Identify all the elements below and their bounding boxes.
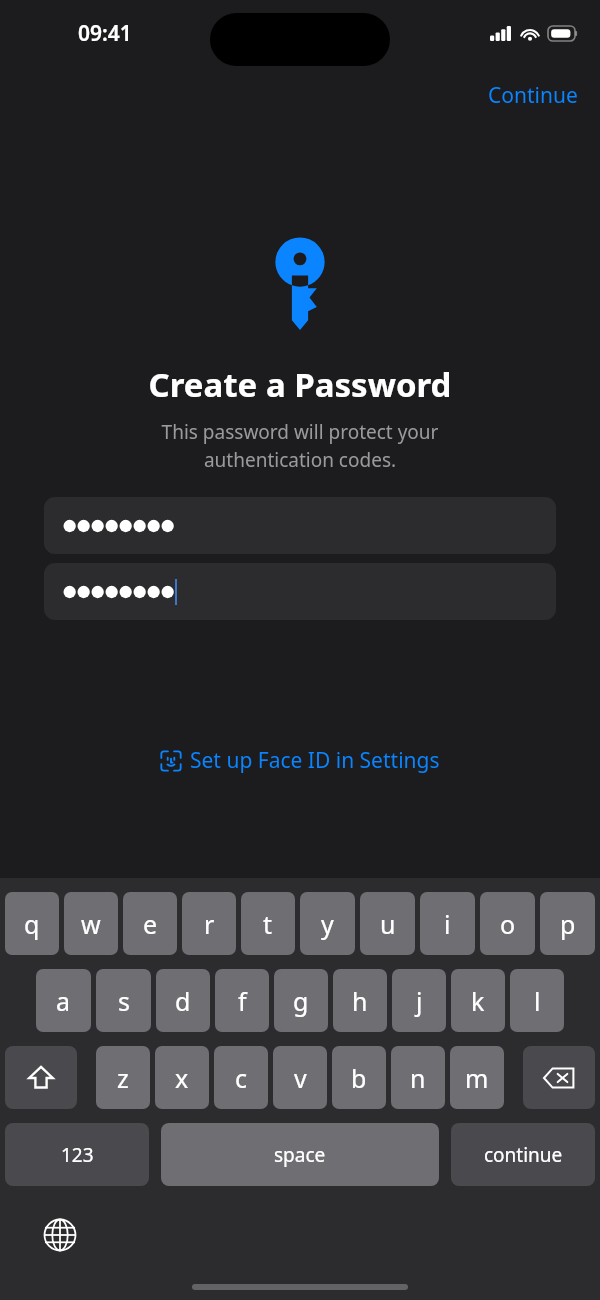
button[interactable]: Backspace (523, 1046, 595, 1109)
button[interactable]: continue (451, 1123, 595, 1186)
staticText: w (81, 907, 101, 941)
staticText: space (274, 1142, 326, 1168)
staticText: a (56, 984, 71, 1018)
button[interactable]: q (5, 892, 59, 955)
staticText: b (351, 1061, 367, 1095)
button[interactable]: e (123, 892, 177, 955)
button[interactable]: b (332, 1046, 386, 1109)
staticText: t (263, 907, 273, 941)
button[interactable]: Password (44, 497, 556, 554)
staticText: continue (484, 1142, 563, 1168)
staticText: h (352, 984, 368, 1018)
staticText: f (238, 984, 247, 1018)
staticText: d (175, 984, 191, 1018)
staticText: This password will protect your authenti… (0, 419, 600, 473)
staticText: 09:41 (78, 19, 132, 48)
button[interactable]: h (333, 969, 387, 1032)
button[interactable]: m (450, 1046, 504, 1109)
staticText: m (465, 1061, 489, 1095)
staticText: x (175, 1061, 189, 1095)
staticText: z (117, 1061, 129, 1095)
button[interactable]: 123 (5, 1123, 149, 1186)
staticText: r (204, 907, 215, 941)
staticText: c (235, 1061, 248, 1095)
button[interactable]: o (480, 892, 535, 955)
staticText: 123 (61, 1142, 94, 1168)
staticText: v (294, 1061, 307, 1095)
staticText: Continue (488, 81, 578, 110)
staticText: k (471, 984, 485, 1018)
button[interactable]: Continue (466, 75, 600, 116)
button[interactable]: f (215, 969, 269, 1032)
button[interactable]: p (540, 892, 595, 955)
button[interactable]: Set up Face ID in Settings (0, 746, 600, 775)
staticText: Create a Password (0, 362, 600, 407)
staticText: n (410, 1061, 426, 1095)
button[interactable]: k (451, 969, 505, 1032)
button[interactable]: w (64, 892, 118, 955)
staticText: j (416, 984, 423, 1018)
button[interactable]: x (155, 1046, 209, 1109)
button[interactable]: t (241, 892, 295, 955)
button[interactable]: n (391, 1046, 445, 1109)
button[interactable]: j (392, 969, 446, 1032)
button[interactable]: Change keyboard language (40, 1215, 80, 1255)
button[interactable]: d (156, 969, 210, 1032)
button[interactable]: v (273, 1046, 327, 1109)
staticText: o (500, 907, 516, 941)
button[interactable]: Confirm password (44, 563, 556, 620)
staticText: l (534, 984, 541, 1018)
button[interactable]: l (510, 969, 564, 1032)
button[interactable]: y (300, 892, 355, 955)
button[interactable]: r (182, 892, 236, 955)
button[interactable]: space (161, 1123, 439, 1186)
button[interactable]: a (36, 969, 91, 1032)
staticText: p (560, 907, 576, 941)
staticText: Set up Face ID in Settings (190, 746, 440, 775)
staticText: g (293, 984, 309, 1018)
staticText: i (444, 907, 451, 941)
button[interactable]: z (96, 1046, 150, 1109)
staticText: s (118, 984, 130, 1018)
button[interactable]: i (420, 892, 475, 955)
button[interactable]: c (214, 1046, 268, 1109)
button[interactable]: s (96, 969, 151, 1032)
button[interactable]: Shift (5, 1046, 77, 1109)
staticText: q (24, 907, 40, 941)
staticText: u (380, 907, 396, 941)
staticText: y (321, 907, 334, 941)
button[interactable]: u (360, 892, 415, 955)
staticText: e (143, 907, 158, 941)
button[interactable]: g (274, 969, 328, 1032)
